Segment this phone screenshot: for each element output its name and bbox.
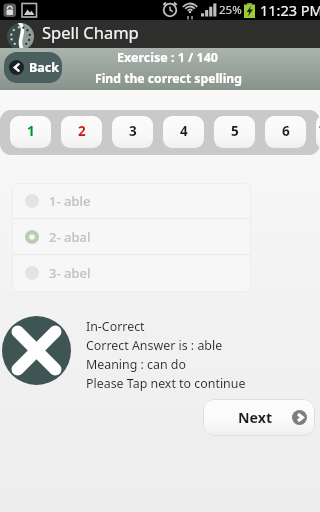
staticText: 3 [129, 122, 137, 140]
staticText: Meaning : can do [86, 356, 186, 373]
button[interactable]: 3- abel [12, 255, 251, 290]
staticText: 5 [231, 122, 239, 140]
button[interactable]: 1- able [12, 183, 251, 218]
staticText: Exercise : 1 / 140 [117, 49, 219, 66]
staticText: 11:23 PM [260, 0, 320, 20]
staticText: 2 [78, 122, 86, 140]
button[interactable]: Back [4, 52, 62, 83]
staticText: Correct Answer is : able [86, 337, 223, 354]
staticText: 4 [180, 122, 188, 140]
staticText: Find the correct spelling [95, 70, 242, 87]
button[interactable]: 2- abal [12, 219, 251, 254]
staticText: Spell Champ [42, 21, 139, 43]
staticText: 3- abel [49, 264, 91, 282]
button[interactable]: 3 [112, 116, 153, 148]
staticText: In-Correct [86, 318, 145, 335]
button[interactable]: 7 [316, 116, 320, 148]
staticText: Please Tap next to continue [86, 375, 246, 392]
button[interactable]: 1 [10, 116, 51, 148]
button[interactable]: 6 [265, 116, 306, 148]
button[interactable]: 5 [214, 116, 255, 148]
button[interactable]: 4 [163, 116, 204, 148]
staticText: 1 [27, 122, 35, 140]
staticText: 1- able [49, 192, 91, 210]
staticText: 25% [219, 2, 242, 18]
staticText: 7 [319, 122, 320, 140]
staticText: Next [238, 408, 273, 427]
button[interactable]: Next [203, 399, 315, 436]
staticText: 2- abal [49, 228, 91, 246]
button[interactable]: 2 [61, 116, 102, 148]
staticText: Back [29, 59, 60, 76]
staticText: 6 [282, 122, 290, 140]
